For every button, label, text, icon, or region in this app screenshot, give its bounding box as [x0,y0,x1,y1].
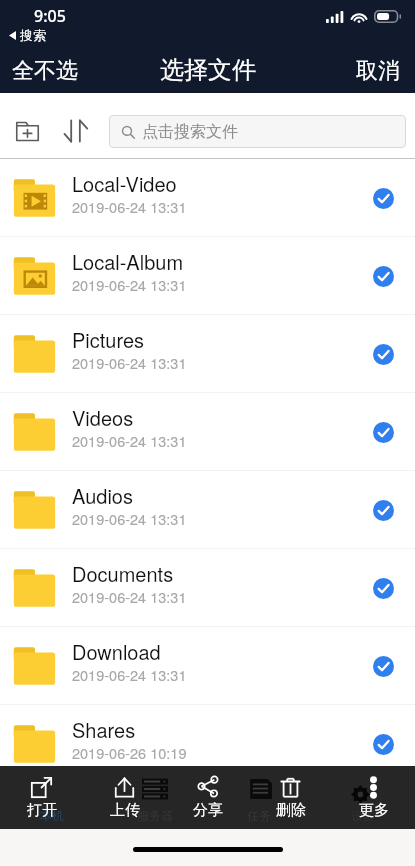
staticText: 选择文件 [160,55,256,85]
staticText: 点击搜索文件 [142,122,238,142]
button[interactable]: Selected [373,734,394,755]
button[interactable]: Local-Video [0,159,415,237]
staticText: Local-Album [72,247,184,276]
button[interactable]: Selected [373,266,394,287]
staticText: Audios [72,481,133,510]
staticText: 2019-06-24 13:31 [72,196,187,217]
staticText: 全不选 [12,57,78,85]
staticText: 更多 [359,801,389,820]
staticText: 服务器 [137,808,173,823]
button[interactable]: Selected [373,344,394,365]
button[interactable]: 打开 [0,766,83,829]
staticText: 本机 [40,808,64,823]
staticText: 删除 [276,801,306,820]
staticText: 分享 [193,801,223,820]
button[interactable]: Download [0,627,415,705]
staticText: 取消 [356,57,400,85]
button[interactable]: Pictures [0,315,415,393]
button[interactable]: Audios [0,471,415,549]
staticText: 设置 [351,808,375,823]
staticText: 2019-06-24 13:31 [72,508,187,529]
staticText: Pictures [72,325,145,354]
button[interactable]: Selected [373,578,394,599]
button[interactable]: 点击搜索文件 [109,115,406,148]
staticText: 2019-06-24 13:31 [72,586,187,607]
button[interactable]: Videos [0,393,415,471]
button[interactable]: 更多 [332,766,415,829]
button[interactable]: 分享 [166,766,249,829]
button[interactable]: Local-Album [0,237,415,315]
staticText: 上传 [110,801,140,820]
button[interactable]: 任务 [207,766,311,829]
staticText: Shares [72,715,136,744]
button[interactable]: Selected [373,422,394,443]
staticText: 9:05 [34,5,66,27]
button[interactable]: Selected [373,500,394,521]
staticText: 2019-06-24 13:31 [72,352,187,373]
button[interactable]: Documents [0,549,415,627]
button[interactable]: Selected [373,656,394,677]
button[interactable]: 本机 [0,766,103,829]
staticText: Download [72,637,161,666]
button[interactable]: 删除 [249,766,332,829]
button[interactable]: Back to 搜索 [9,27,46,43]
staticText: 任务 [247,808,271,823]
button[interactable]: 全不选 [0,49,90,93]
button[interactable]: Shares [0,705,415,783]
staticText: 打开 [27,801,57,820]
staticText: 2019-06-24 13:31 [72,430,187,451]
staticText: Documents [72,559,174,588]
button[interactable]: Sort [56,111,96,151]
button[interactable]: 服务器 [103,766,207,829]
button[interactable]: 上传 [83,766,166,829]
staticText: 2019-06-26 10:19 [72,742,187,763]
button[interactable]: 设置 [311,766,415,829]
staticText: 2019-06-24 13:31 [72,664,187,685]
staticText: Local-Video [72,169,177,198]
button[interactable]: 取消 [344,49,415,93]
staticText: Videos [72,403,134,432]
staticText: 搜索 [20,27,46,43]
button[interactable]: New folder [7,111,47,151]
staticText: 2019-06-24 13:31 [72,274,187,295]
button[interactable]: Selected [373,188,394,209]
